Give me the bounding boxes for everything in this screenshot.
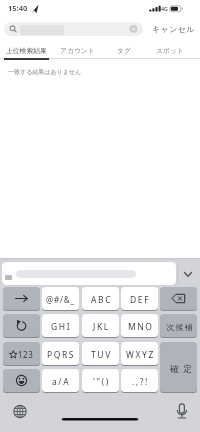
button[interactable]: スポット	[146, 43, 194, 58]
button[interactable]: '"()	[82, 369, 119, 392]
staticText: 上位検索結果	[6, 46, 47, 55]
staticText: GHI	[51, 321, 72, 333]
button[interactable]	[2, 262, 176, 285]
staticText: DEF	[130, 294, 151, 306]
staticText: WXYZ	[126, 349, 155, 361]
button[interactable]	[3, 369, 40, 392]
staticText: a/A	[52, 376, 71, 388]
button[interactable]: .,?!	[121, 369, 158, 392]
button[interactable]: JKL	[82, 314, 119, 337]
button[interactable]: 123	[3, 342, 40, 365]
button[interactable]	[3, 314, 40, 337]
button[interactable]	[160, 287, 197, 310]
button[interactable]: タグ	[105, 43, 143, 58]
staticText: '"()	[93, 376, 110, 388]
staticText: PQRS	[47, 349, 76, 361]
button[interactable]: a/A	[42, 369, 79, 392]
staticText: ABC	[91, 294, 113, 306]
button[interactable]: 確定	[160, 342, 197, 392]
staticText: @#/&_	[46, 294, 75, 305]
button[interactable]: MNO	[121, 314, 158, 337]
button[interactable]: 次候補	[160, 314, 197, 337]
button[interactable]	[4, 22, 143, 36]
button[interactable]: PQRS	[42, 342, 79, 365]
staticText: 4G	[161, 5, 168, 12]
staticText: 確定	[168, 363, 194, 374]
staticText: 15:40	[8, 3, 28, 13]
button[interactable]: ABC	[82, 287, 119, 310]
staticText: TUV	[91, 349, 112, 361]
button[interactable]: GHI	[42, 314, 79, 337]
staticText: MNO	[128, 321, 154, 333]
button[interactable]: @#/&_	[42, 287, 79, 310]
button[interactable]: アカウント	[55, 43, 100, 58]
button[interactable]: 上位検索結果	[2, 43, 51, 58]
staticText: .,?!	[132, 376, 149, 388]
button[interactable]: DEF	[121, 287, 158, 310]
staticText: アカウント	[60, 46, 95, 55]
button[interactable]	[168, 399, 196, 423]
staticText: タグ	[117, 46, 131, 55]
button[interactable]: キャンセル	[148, 22, 198, 36]
button[interactable]: TUV	[82, 342, 119, 365]
staticText: 123	[18, 349, 34, 360]
button[interactable]	[178, 260, 200, 286]
staticText: スポット	[156, 46, 184, 55]
staticText: 一致する結果はありません	[8, 68, 82, 76]
staticText: 次候補	[166, 322, 193, 332]
button[interactable]	[6, 399, 34, 423]
button[interactable]: WXYZ	[121, 342, 158, 365]
staticText: キャンセル	[152, 24, 195, 34]
staticText: JKL	[93, 321, 110, 333]
button[interactable]	[3, 287, 40, 310]
